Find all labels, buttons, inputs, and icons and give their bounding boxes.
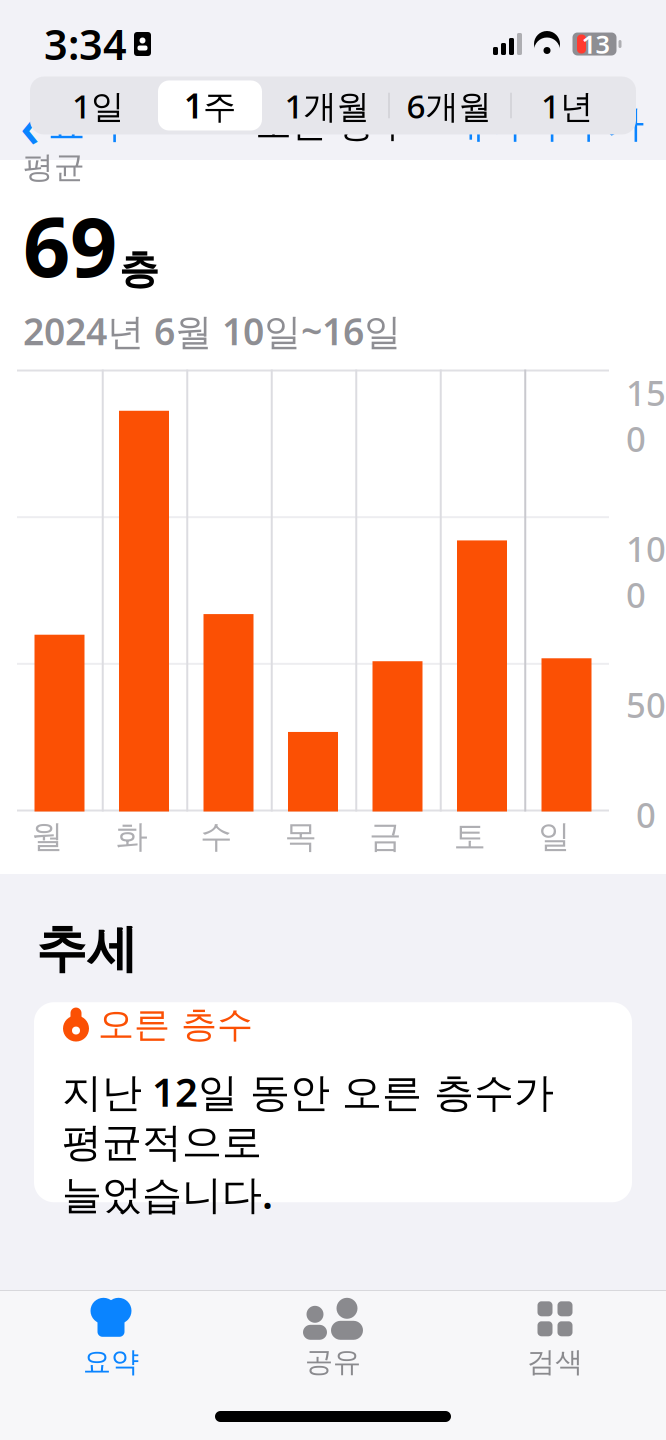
button[interactable]: 데이터 추가 [448,95,666,153]
staticText: 1개월 [284,83,369,128]
staticText: 2024년 6월 10일~16일 [23,306,401,355]
staticText: 50 [626,681,666,727]
button[interactable]: 공유 [222,1291,444,1387]
button[interactable]: 1년 [510,76,624,134]
button[interactable]: 추세 [34,887,632,969]
button[interactable]: 1개월 [266,76,388,134]
staticText: 금 [369,817,401,856]
staticText: 오른 층수 [255,102,410,146]
staticText: 요약 [48,101,122,147]
button[interactable]: 오른 층수 [34,1002,632,1202]
staticText: 3:34 [44,17,127,71]
staticText: 수 [200,817,232,856]
staticText: 검색 [527,1345,583,1379]
staticText: 100 [626,525,666,618]
staticText: 층 [119,245,159,294]
button[interactable]: ‹ [0,77,122,171]
staticText: 추세 [60,906,132,951]
staticText: 1년 [541,83,593,128]
staticText: 0 [636,791,656,837]
staticText: 1주 [184,83,236,128]
staticText: ‹ [20,83,40,165]
button[interactable]: 1주 [154,76,266,134]
staticText: 화 [116,817,148,856]
staticText: 요약 [83,1345,139,1379]
staticText: 목 [285,817,317,856]
staticText: 토 [454,817,486,856]
staticText: 150 [626,369,666,462]
staticText: 데이터 추가 [448,101,644,147]
staticText: 일 [538,817,570,856]
button[interactable]: 검색 [444,1291,666,1387]
button[interactable]: 6개월 [388,76,510,134]
staticText: 평균 [23,148,85,186]
staticText: 오른 층수 [98,1002,253,1047]
staticText: 6개월 [406,83,491,128]
button[interactable]: 1일 [42,76,154,134]
staticText: 지난 12일 동안 오른 층수가 평균적으로 늘었습니다. [62,1065,554,1220]
staticText: 13 [581,27,609,61]
button[interactable]: 요약 [0,1291,222,1387]
staticText: 공유 [305,1345,361,1379]
staticText: 1일 [72,83,124,128]
staticText: 추세 [36,918,138,980]
staticText: 월 [31,817,63,856]
staticText: 69 [23,190,117,300]
